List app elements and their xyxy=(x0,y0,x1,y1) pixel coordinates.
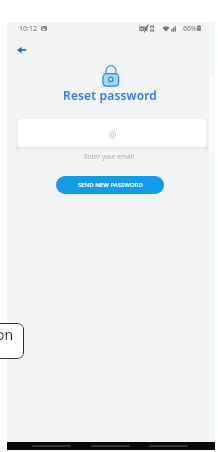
staticText: Enter your email xyxy=(0,152,218,161)
button[interactable]: SEND NEW PASSWORD xyxy=(56,176,164,194)
button[interactable]: @ xyxy=(18,119,206,147)
button[interactable]: Back xyxy=(10,38,33,61)
staticText: 66% xyxy=(183,24,197,34)
staticText: 10:12 xyxy=(19,24,37,34)
button[interactable]: Recents xyxy=(149,442,188,450)
button[interactable]: on xyxy=(0,323,24,359)
button[interactable]: Back xyxy=(32,442,71,450)
button[interactable]: Home xyxy=(91,442,130,450)
staticText: @ xyxy=(109,129,117,140)
staticText: Reset password xyxy=(1,87,218,103)
staticText: SEND NEW PASSWORD xyxy=(78,181,143,189)
staticText: on xyxy=(0,325,14,344)
